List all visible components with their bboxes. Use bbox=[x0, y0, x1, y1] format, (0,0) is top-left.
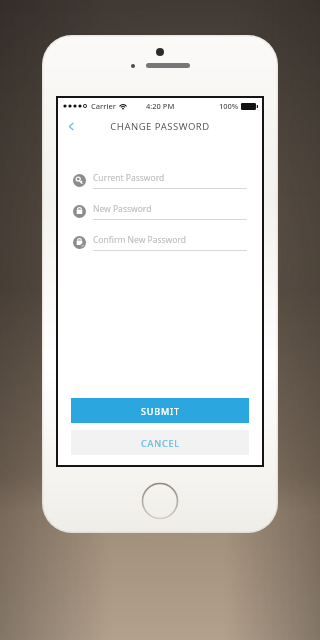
staticText: Carrier bbox=[91, 101, 116, 111]
staticText: CANCEL bbox=[141, 437, 180, 449]
staticText: SUBMIT bbox=[141, 405, 180, 417]
button[interactable]: Current Password bbox=[73, 169, 247, 191]
button[interactable]: New Password bbox=[73, 200, 247, 222]
staticText: Current Password bbox=[93, 172, 165, 184]
button[interactable]: SUBMIT bbox=[71, 398, 249, 423]
button[interactable]: Confirm New Password bbox=[73, 231, 247, 253]
staticText: 4:20 PM bbox=[146, 101, 175, 111]
staticText: New Password bbox=[93, 203, 152, 215]
staticText: CHANGE PASSWORD bbox=[110, 120, 210, 133]
staticText: 100% bbox=[219, 101, 239, 111]
button[interactable]: Back bbox=[58, 113, 84, 139]
staticText: Confirm New Password bbox=[93, 234, 186, 246]
button[interactable]: CANCEL bbox=[71, 430, 249, 455]
